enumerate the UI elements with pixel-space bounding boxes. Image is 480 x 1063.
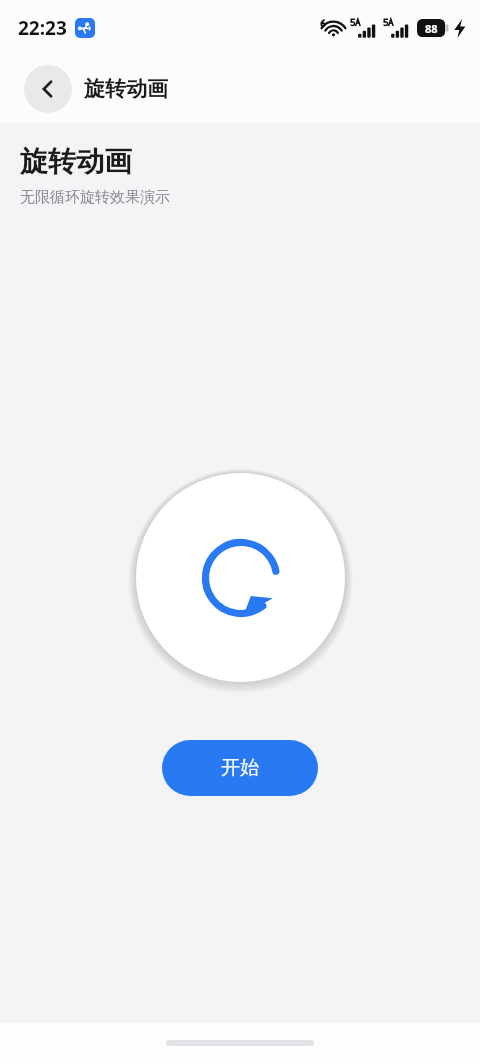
staticText: 无限循环旋转效果演示 bbox=[20, 188, 170, 207]
button[interactable]: 开始 bbox=[162, 740, 318, 796]
staticText: 旋转动画 bbox=[20, 144, 132, 179]
button[interactable]: Back bbox=[24, 65, 72, 113]
staticText: 22:23 bbox=[18, 15, 67, 41]
staticText: 旋转动画 bbox=[84, 76, 168, 102]
staticText: 88 bbox=[425, 21, 438, 36]
staticText: 开始 bbox=[221, 756, 259, 780]
